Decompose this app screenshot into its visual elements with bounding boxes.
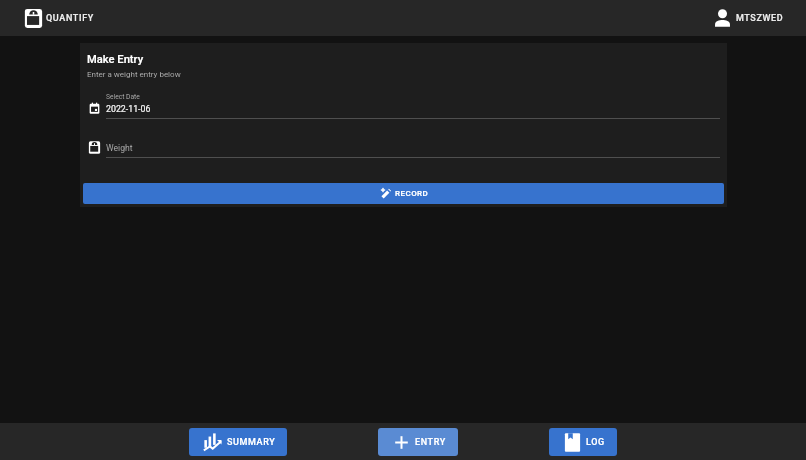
button[interactable]: SUMMARY (189, 428, 287, 456)
button[interactable]: ENTRY (378, 428, 458, 456)
staticText: Make Entry (87, 53, 144, 66)
staticText: ENTRY (415, 437, 446, 448)
button[interactable]: Weight (87, 138, 720, 159)
other: Select date (88, 102, 101, 115)
button[interactable]: Select date (87, 91, 720, 120)
other: Weight (87, 140, 102, 155)
staticText: SUMMARY (227, 437, 276, 448)
staticText: QUANTIFY (46, 13, 94, 24)
staticText: Enter a weight entry below (87, 70, 181, 79)
other: Account (711, 7, 734, 30)
button[interactable]: RECORD (83, 183, 724, 204)
staticText: 2022-11-06 (106, 104, 151, 114)
staticText: RECORD (395, 189, 429, 198)
staticText: MTSZWED (736, 13, 784, 24)
staticText: LOG (586, 437, 605, 448)
button[interactable]: Quantify home (22, 7, 94, 30)
staticText: Weight (106, 143, 133, 153)
button[interactable]: Account (711, 7, 784, 30)
button[interactable]: LOG (549, 428, 617, 456)
other: Quantify home (22, 7, 45, 30)
staticText: Select Date (106, 93, 140, 101)
